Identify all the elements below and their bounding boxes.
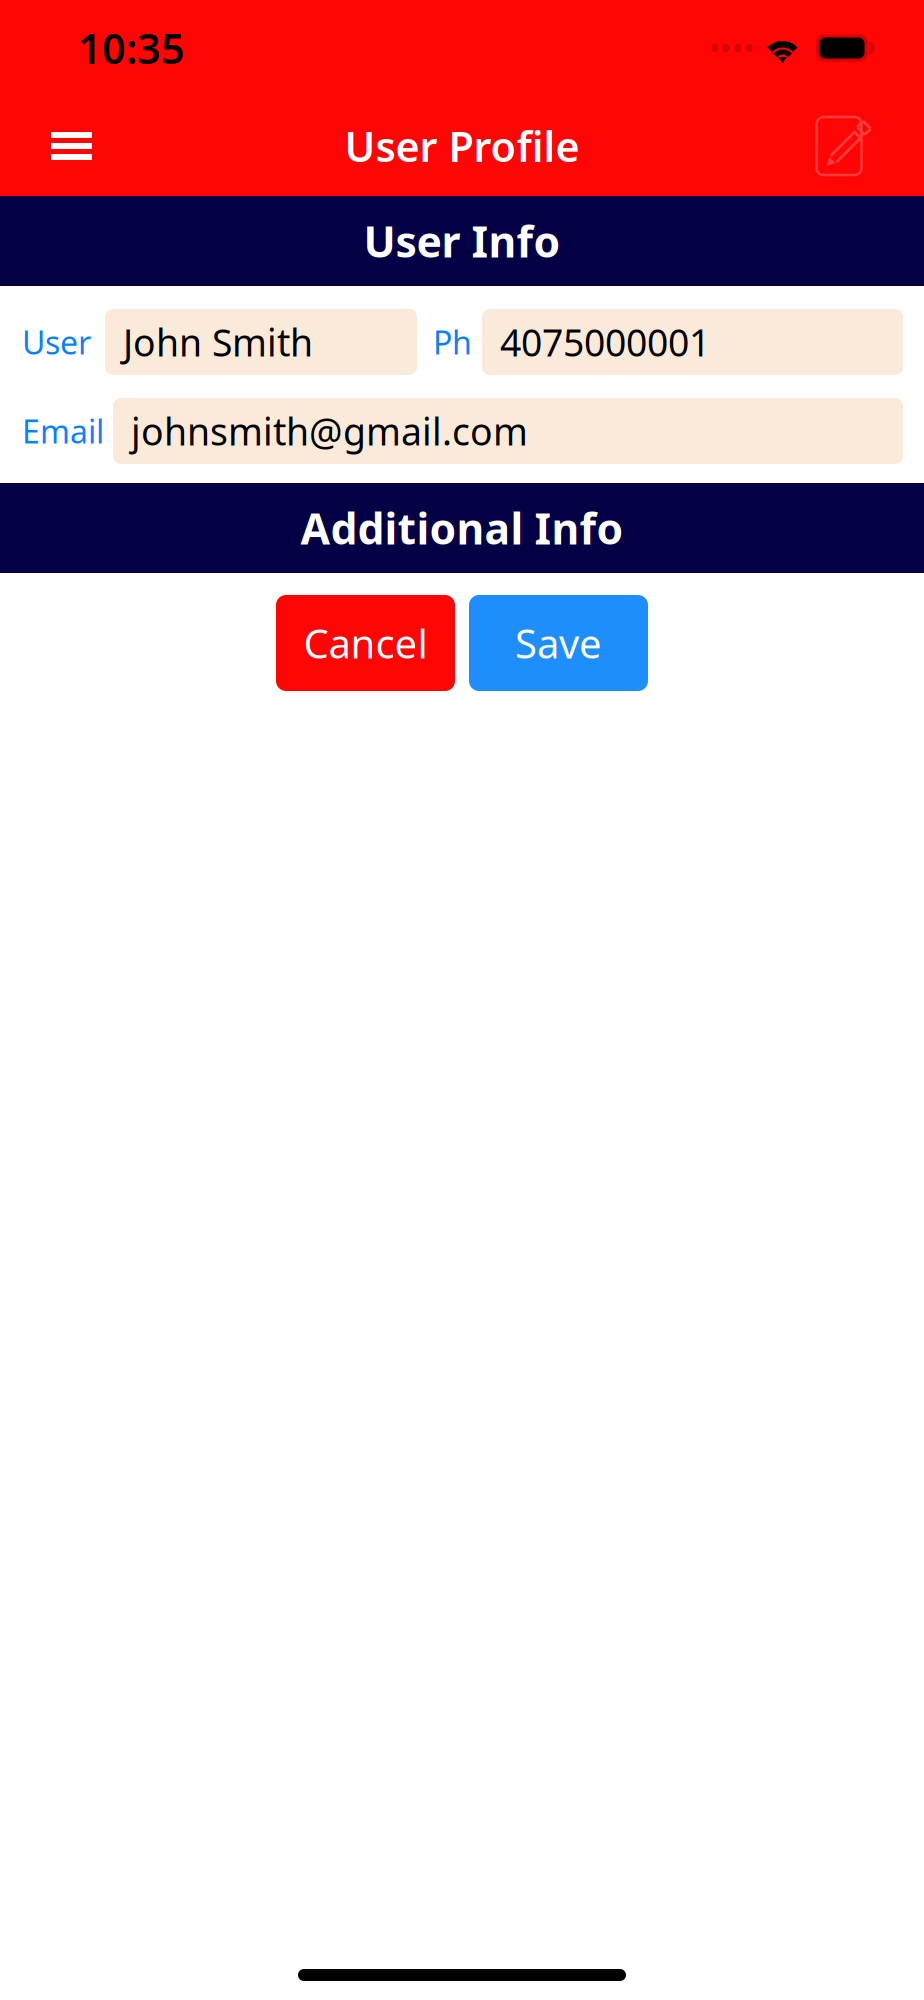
staticText: User Profile bbox=[344, 119, 579, 173]
staticText: Email bbox=[22, 410, 104, 452]
staticText: Additional Info bbox=[300, 500, 623, 556]
staticText: 4075000001 bbox=[500, 317, 710, 367]
staticText: Cancel bbox=[303, 616, 427, 669]
button[interactable]: Menu bbox=[28, 98, 115, 194]
staticText: johnsmith@gmail.com bbox=[131, 406, 528, 456]
staticText: User Info bbox=[363, 213, 560, 269]
staticText: Save bbox=[515, 616, 602, 669]
button[interactable]: Cancel bbox=[276, 595, 455, 691]
button[interactable]: Save bbox=[469, 595, 648, 691]
staticText: John Smith bbox=[123, 317, 313, 367]
staticText: User bbox=[22, 321, 91, 363]
button[interactable]: John Smith bbox=[105, 309, 417, 375]
staticText: Ph bbox=[433, 321, 472, 363]
staticText: 10:35 bbox=[78, 21, 185, 75]
button[interactable]: Edit bbox=[800, 98, 887, 194]
button[interactable]: 4075000001 bbox=[482, 309, 903, 375]
button[interactable]: johnsmith@gmail.com bbox=[113, 398, 903, 464]
